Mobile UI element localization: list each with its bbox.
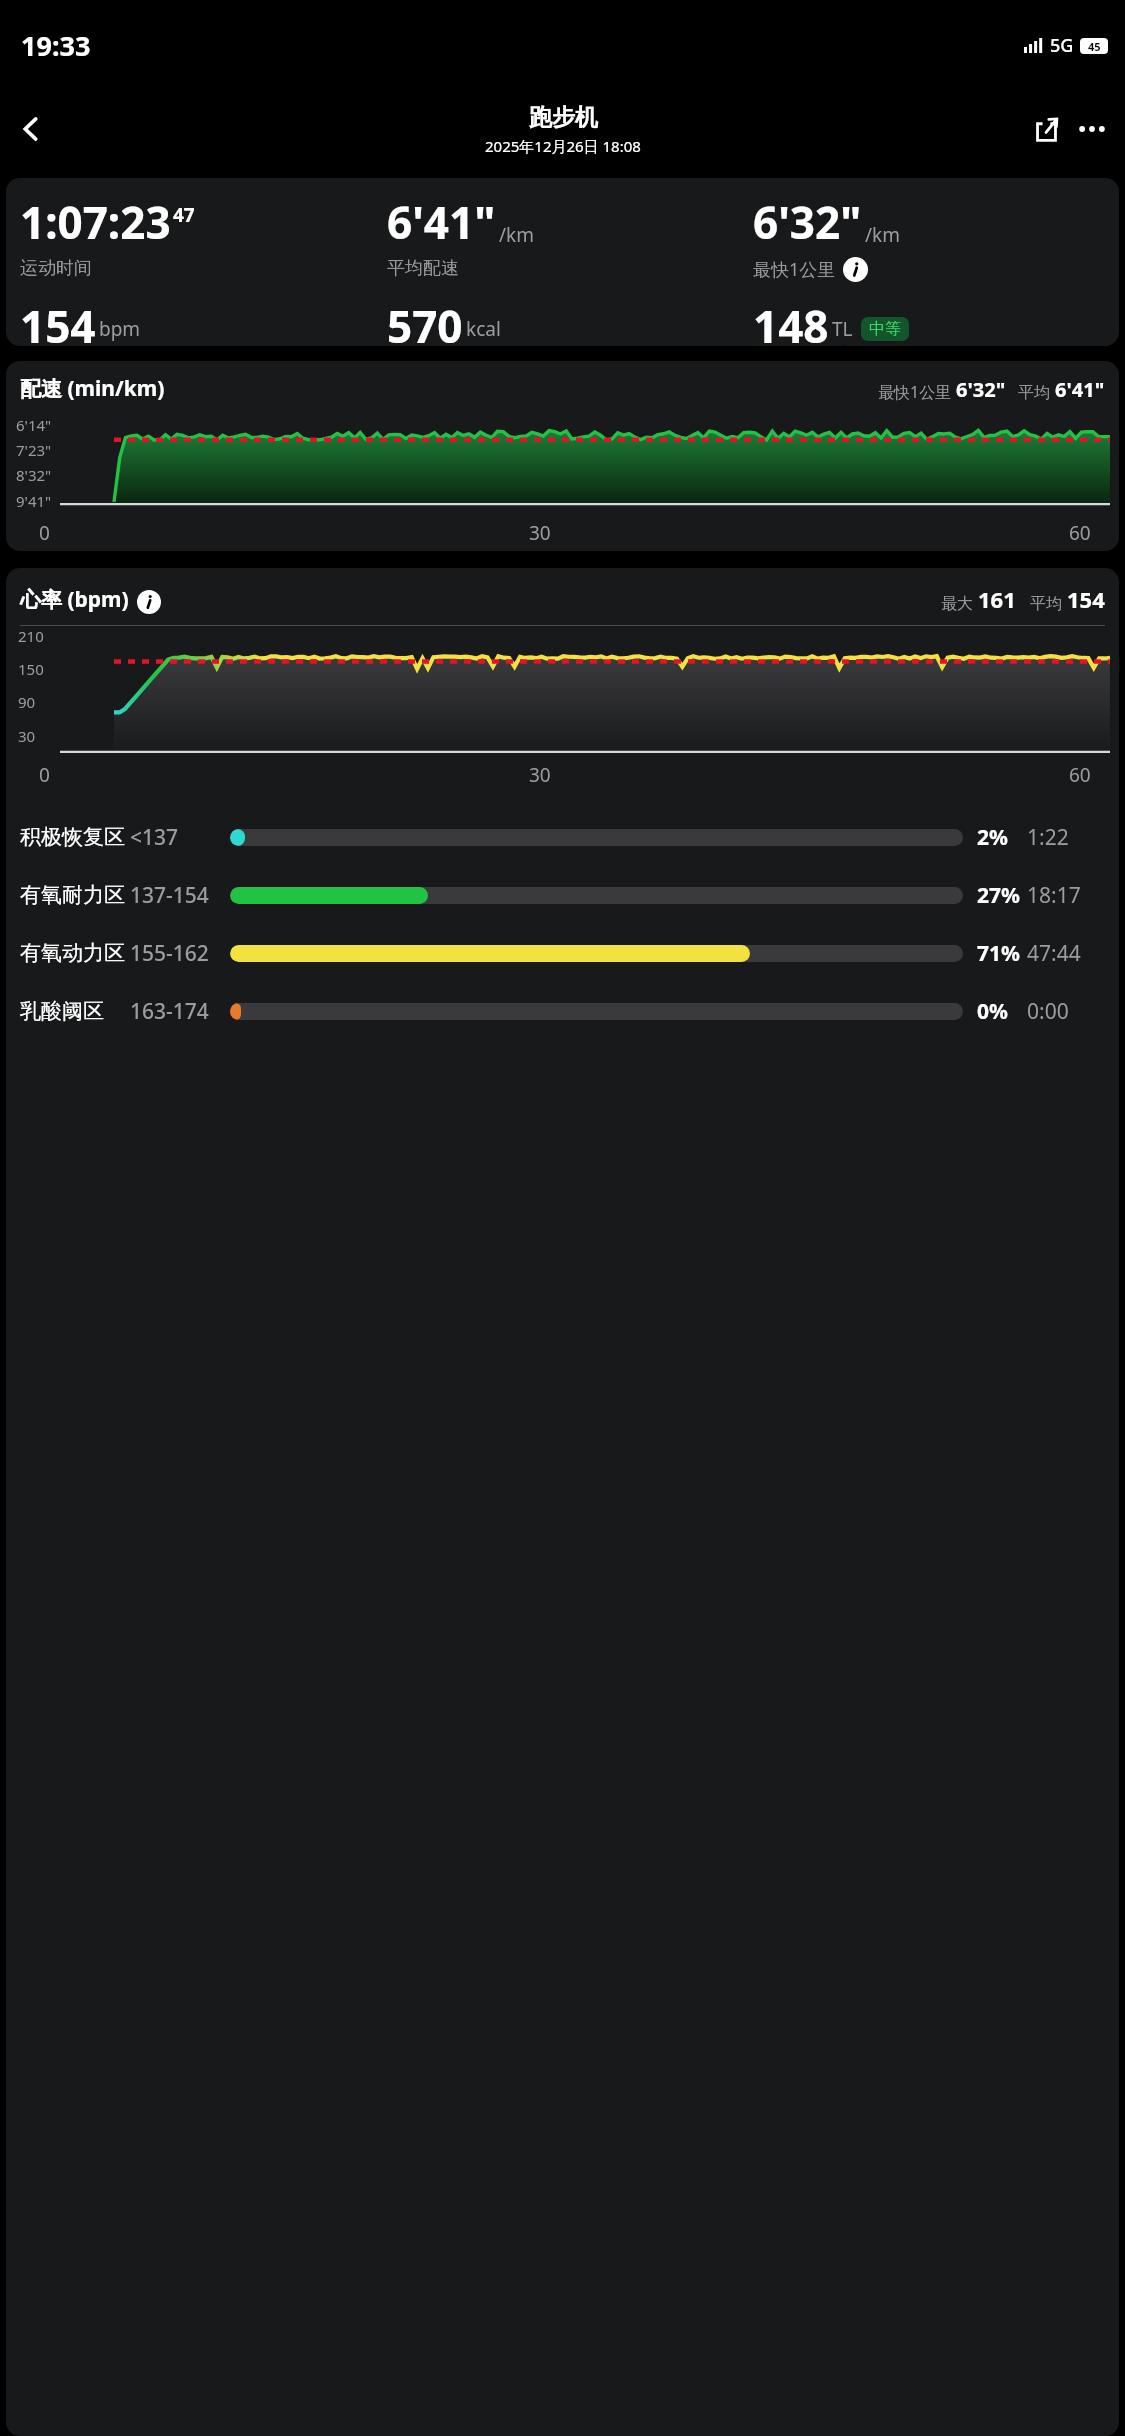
button[interactable]: 有氧耐力区: [6, 866, 1119, 924]
staticText: 2025年12月26日 18:08: [485, 136, 641, 156]
staticText: 90: [18, 692, 36, 712]
staticText: 6'41": [387, 192, 496, 252]
staticText: 154: [20, 296, 96, 346]
staticText: 1:22: [1027, 823, 1105, 852]
staticText: 有氧耐力区: [20, 882, 130, 908]
staticText: 平均: [1018, 381, 1055, 403]
staticText: kcal: [466, 316, 501, 342]
staticText: 9'41": [16, 491, 52, 511]
button[interactable]: 乳酸阈区: [6, 982, 1119, 1040]
staticText: 平均配速: [387, 257, 459, 280]
button[interactable]: More options: [1069, 106, 1115, 152]
staticText: bpm: [99, 316, 141, 342]
button[interactable]: 1:07:23: [6, 178, 1119, 346]
staticText: 570: [387, 296, 463, 346]
staticText: 2%: [977, 823, 1027, 852]
staticText: 运动时间: [20, 257, 92, 280]
staticText: 30: [18, 726, 36, 746]
staticText: 中等: [869, 319, 901, 339]
staticText: 60: [1069, 520, 1091, 546]
staticText: 最快1公里: [878, 381, 956, 403]
staticText: 155-162: [130, 939, 230, 968]
staticText: 148: [753, 296, 829, 346]
staticText: 跑步机: [529, 103, 598, 132]
button[interactable]: 有氧动力区: [6, 924, 1119, 982]
staticText: 18:17: [1027, 881, 1105, 910]
staticText: 乳酸阈区: [20, 998, 130, 1024]
staticText: 210: [18, 626, 44, 646]
staticText: 6'32": [956, 376, 1006, 403]
staticText: 心率 (bpm): [20, 585, 129, 614]
staticText: 0%: [977, 997, 1027, 1026]
staticText: 161: [978, 584, 1016, 614]
staticText: 60: [1069, 762, 1091, 788]
staticText: 154: [1067, 584, 1105, 614]
staticText: 8'32": [16, 465, 52, 485]
staticText: 137-154: [130, 881, 230, 910]
staticText: 71%: [977, 939, 1027, 968]
button[interactable]: 心率 (bpm): [6, 568, 1119, 2436]
staticText: 6'41": [1055, 376, 1105, 403]
staticText: 30: [529, 520, 551, 546]
staticText: 30: [529, 762, 551, 788]
staticText: 配速 (min/km): [20, 374, 165, 403]
staticText: TL: [832, 316, 853, 342]
staticText: 1:07:23: [20, 192, 171, 252]
staticText: 27%: [977, 881, 1027, 910]
staticText: 19:33: [21, 27, 91, 64]
staticText: 47:44: [1027, 939, 1105, 968]
staticText: 最快1公里: [753, 257, 836, 282]
button[interactable]: 配速 (min/km): [6, 361, 1119, 551]
staticText: 150: [18, 659, 44, 679]
staticText: 有氧动力区: [20, 940, 130, 966]
staticText: 0: [39, 762, 50, 788]
staticText: 5G: [1050, 33, 1074, 58]
staticText: /km: [865, 222, 900, 248]
button[interactable]: Share: [1023, 106, 1069, 152]
staticText: 47: [173, 202, 195, 228]
button[interactable]: Back: [6, 104, 56, 154]
staticText: 最大: [941, 592, 978, 614]
staticText: 45: [1088, 39, 1101, 54]
staticText: 积极恢复区: [20, 824, 130, 850]
staticText: 6'32": [753, 192, 862, 252]
staticText: /km: [499, 222, 534, 248]
button[interactable]: 积极恢复区: [6, 808, 1119, 866]
staticText: 163-174: [130, 997, 230, 1026]
staticText: 平均: [1030, 592, 1067, 614]
staticText: 0:00: [1027, 997, 1105, 1026]
staticText: 0: [39, 520, 50, 546]
staticText: 7'23": [16, 440, 52, 460]
staticText: 6'14": [16, 415, 52, 435]
staticText: <137: [130, 823, 230, 852]
